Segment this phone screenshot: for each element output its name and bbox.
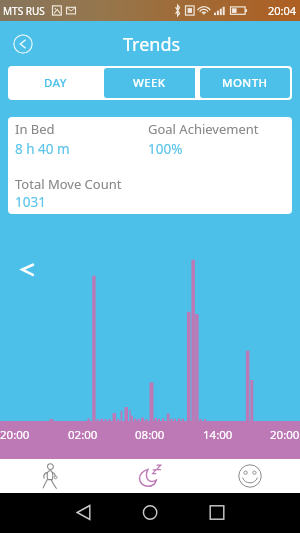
button[interactable]: Back: [13, 34, 33, 54]
button[interactable]: Activity: [0, 459, 100, 493]
button[interactable]: Recents: [206, 501, 229, 524]
staticText: 20:04: [268, 3, 297, 18]
button[interactable]: Mood: [200, 459, 300, 493]
staticText: 8 h 40 m: [15, 140, 70, 158]
button[interactable]: DAY: [8, 66, 102, 100]
staticText: Goal Achievement: [148, 120, 259, 138]
staticText: 14:00: [203, 427, 233, 443]
button[interactable]: Back: [72, 501, 95, 524]
button[interactable]: Home: [138, 501, 161, 524]
staticText: 100%: [148, 140, 183, 158]
staticText: 20:00: [270, 427, 300, 443]
button[interactable]: WEEK: [102, 66, 197, 100]
staticText: 02:00: [68, 427, 98, 443]
button[interactable]: Sleep: [100, 459, 200, 493]
staticText: 08:00: [135, 427, 165, 443]
staticText: MTS RUS: [3, 4, 45, 18]
staticText: Total Move Count: [15, 175, 122, 193]
staticText: 1031: [15, 193, 46, 211]
staticText: In Bed: [15, 120, 55, 138]
staticText: Trends: [123, 32, 181, 57]
button[interactable]: MONTH: [197, 66, 292, 100]
staticText: 20:00: [0, 427, 30, 443]
staticText: WEEK: [133, 75, 166, 91]
staticText: MONTH: [222, 75, 268, 91]
staticText: DAY: [44, 75, 67, 91]
